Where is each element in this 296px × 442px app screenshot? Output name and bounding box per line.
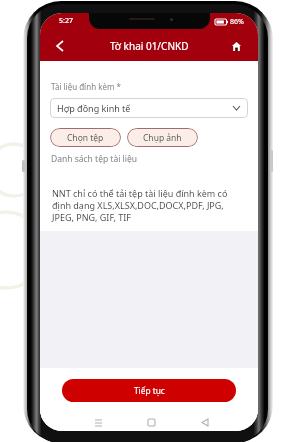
staticText: Tờ khai 01/CNKD [110, 39, 189, 53]
button[interactable]: Back [178, 414, 231, 431]
button[interactable]: Recent apps [72, 414, 125, 431]
staticText: NNT chỉ có thể tải tệp tài liệu đính kèm… [52, 187, 228, 199]
staticText: Tiếp tục [134, 385, 165, 396]
staticText: 86% [230, 17, 244, 27]
button[interactable]: Chọn tệp [50, 128, 121, 147]
staticText: Chụp ảnh [143, 132, 182, 144]
staticText: Danh sách tệp tài liệu [51, 153, 138, 165]
button[interactable]: Home [125, 414, 178, 431]
button[interactable]: Chụp ảnh [127, 128, 198, 147]
staticText: 5:27 [59, 16, 73, 26]
staticText: định dạng XLS,XLSX,DOC,DOCX,PDF, JPG, [52, 199, 224, 211]
button[interactable]: Tiếp tục [62, 379, 236, 402]
button[interactable]: Home [225, 35, 247, 57]
staticText: Hợp đồng kinh tế [57, 102, 131, 114]
staticText: Tài liệu đính kèm * [51, 81, 121, 92]
staticText: Chọn tệp [67, 132, 104, 144]
button[interactable]: Hợp đồng kinh tế [50, 98, 248, 118]
button[interactable]: Back [49, 35, 71, 57]
staticText: JPEG, PNG, GIF, TIF [52, 211, 132, 223]
